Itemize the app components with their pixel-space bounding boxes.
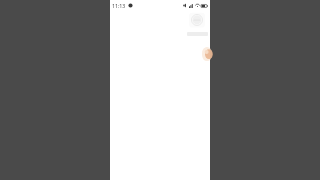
button[interactable]: Profile <box>186 12 208 36</box>
staticText: 11:13 <box>112 2 126 9</box>
